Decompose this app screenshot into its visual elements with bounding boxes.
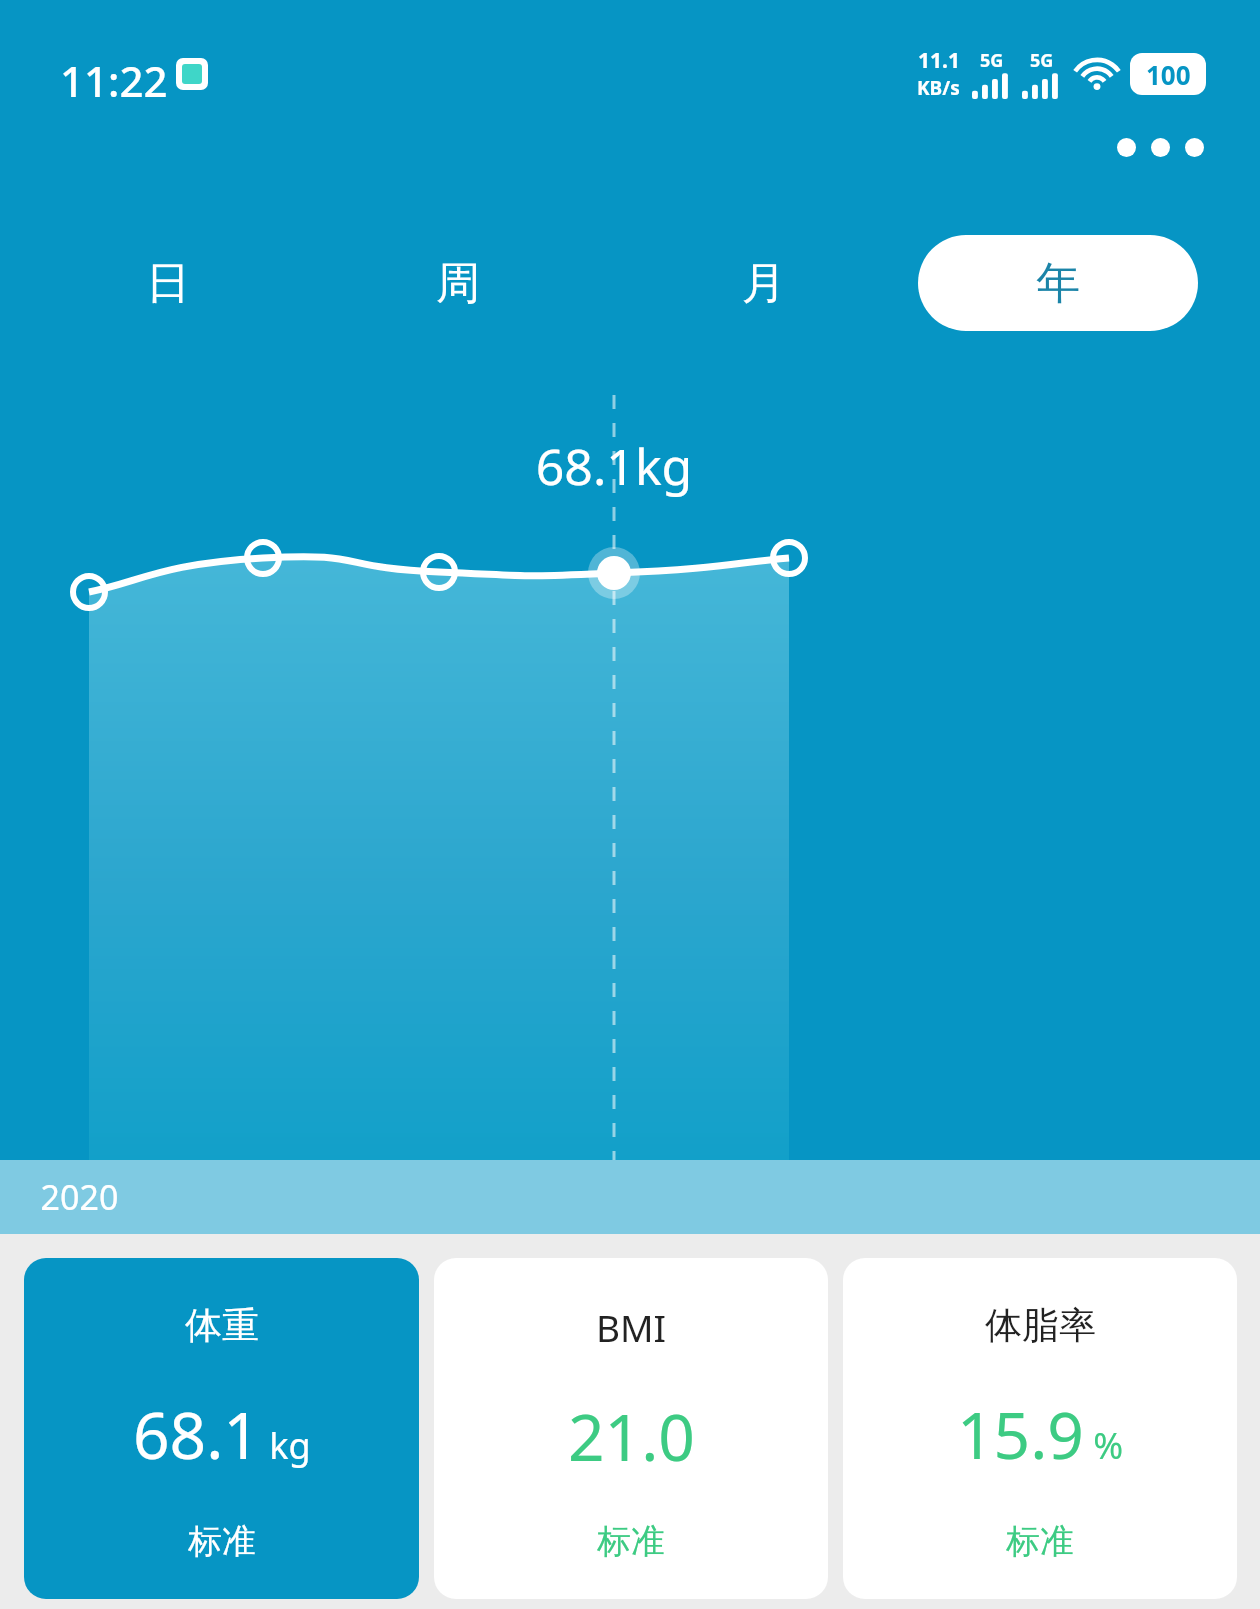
staticText: 21.0 — [568, 1393, 695, 1480]
staticText: 5G — [980, 48, 1004, 73]
staticText: 5G — [1030, 48, 1054, 73]
staticText: KB/s — [917, 75, 960, 101]
button[interactable]: 日 — [98, 233, 238, 333]
staticText: kg — [260, 1421, 311, 1470]
staticText: 68.1kg — [414, 432, 814, 500]
button[interactable]: 年 — [918, 235, 1198, 331]
staticText: 100 — [1146, 57, 1191, 92]
staticText: 月 — [742, 256, 786, 311]
staticText: 体脂率 — [985, 1302, 1096, 1349]
staticText: 体重 — [185, 1302, 259, 1349]
button[interactable]: BMI — [434, 1258, 828, 1599]
button[interactable]: 月 — [694, 233, 834, 333]
staticText: 标准 — [597, 1520, 665, 1563]
staticText: % — [1084, 1421, 1124, 1470]
staticText: 2020 — [19, 1174, 140, 1220]
staticText: 周 — [436, 256, 480, 311]
button[interactable]: 体重 — [24, 1258, 419, 1599]
staticText: 11:22 — [60, 52, 168, 109]
staticText: 15.9 — [957, 1391, 1084, 1478]
staticText: 标准 — [188, 1520, 256, 1563]
button[interactable]: 体脂率 — [843, 1258, 1237, 1599]
staticText: 68.1 — [133, 1391, 260, 1478]
button[interactable]: More options — [1107, 128, 1214, 167]
staticText: BMI — [596, 1302, 667, 1352]
staticText: 11.1 — [918, 46, 960, 75]
staticText: 标准 — [1006, 1520, 1074, 1563]
staticText: 日 — [146, 256, 190, 311]
staticText: 年 — [1036, 256, 1080, 311]
button[interactable]: 周 — [388, 233, 528, 333]
